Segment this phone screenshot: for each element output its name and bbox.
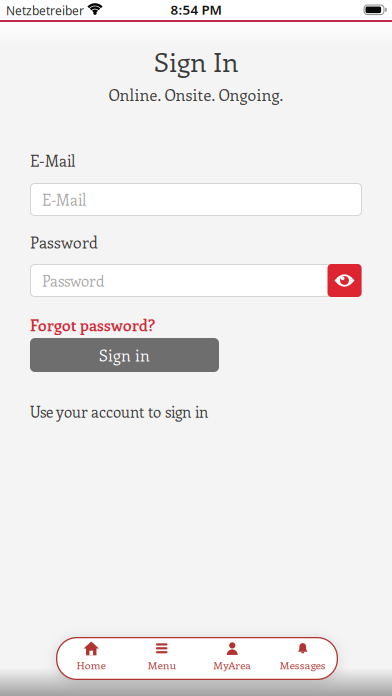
staticText: Sign in xyxy=(99,344,150,366)
staticText: MyArea xyxy=(213,658,251,672)
staticText: E-Mail xyxy=(30,150,75,171)
staticText: Password xyxy=(42,270,104,291)
staticText: Home xyxy=(77,658,106,672)
staticText: Use your account to sign in xyxy=(30,401,208,422)
staticText: Forgot password? xyxy=(30,315,155,335)
staticText: Menu xyxy=(148,658,176,672)
staticText: Netzbetreiber xyxy=(6,2,84,18)
staticText: E-Mail xyxy=(42,189,86,210)
staticText: Online. Onsite. Ongoing. xyxy=(108,84,283,105)
staticText: 8:54 PM xyxy=(170,1,221,18)
staticText: Messages xyxy=(280,658,326,672)
staticText: Password xyxy=(30,231,98,253)
staticText: Sign In xyxy=(154,43,238,79)
